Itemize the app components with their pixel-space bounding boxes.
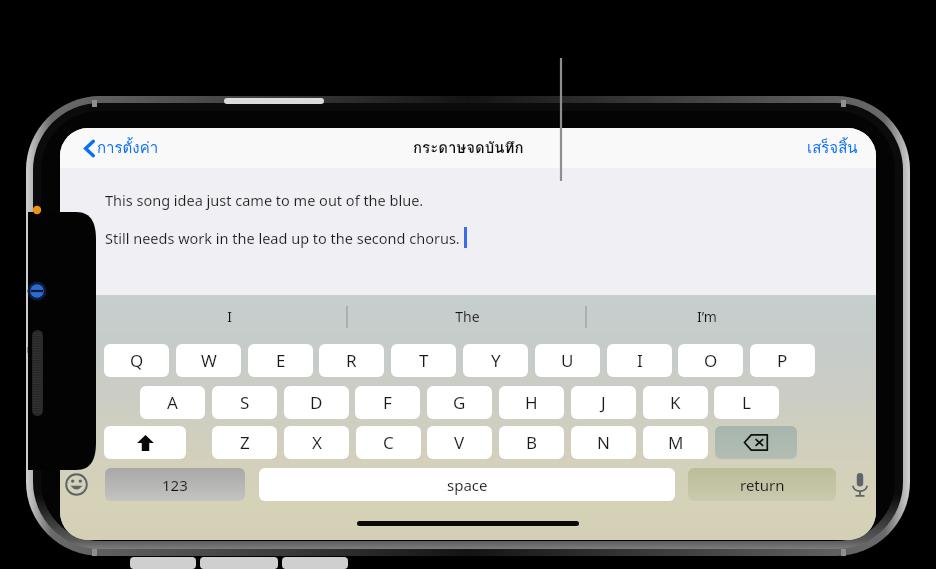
staticText: Still needs work in the lead up to the s… xyxy=(105,228,460,248)
staticText: M xyxy=(668,431,684,454)
staticText: 123 xyxy=(162,475,188,495)
button[interactable]: U xyxy=(535,344,600,377)
staticText: Y xyxy=(491,349,501,372)
button[interactable]: V xyxy=(427,426,492,459)
staticText: This song idea just came to me out of th… xyxy=(105,190,424,210)
staticText: W xyxy=(201,349,217,372)
staticText: J xyxy=(601,391,606,414)
staticText: R xyxy=(346,349,357,372)
staticText: Z xyxy=(240,431,250,454)
staticText: I xyxy=(227,307,232,326)
button[interactable]: T xyxy=(391,344,456,377)
button[interactable]: E xyxy=(248,344,313,377)
staticText: T xyxy=(419,349,429,372)
staticText: The xyxy=(455,307,480,326)
button[interactable]: Y xyxy=(463,344,528,377)
button[interactable]: G xyxy=(427,386,492,419)
staticText: U xyxy=(561,349,574,372)
button[interactable]: H xyxy=(499,386,564,419)
staticText: L xyxy=(742,391,751,414)
staticText: F xyxy=(383,391,392,414)
button[interactable]: I xyxy=(607,344,672,377)
button[interactable]: K xyxy=(643,386,708,419)
button[interactable]: I’m xyxy=(662,301,752,331)
staticText: D xyxy=(310,391,323,414)
button[interactable]: C xyxy=(356,426,421,459)
button[interactable]: N xyxy=(571,426,636,459)
button[interactable]: Shift xyxy=(104,426,186,459)
button[interactable]: B xyxy=(499,426,564,459)
button[interactable]: J xyxy=(571,386,636,419)
button[interactable]: W xyxy=(176,344,241,377)
staticText: C xyxy=(383,431,394,454)
staticText: I xyxy=(637,349,643,372)
staticText: E xyxy=(276,349,286,372)
button[interactable]: Z xyxy=(212,426,277,459)
staticText: กระดาษจดบันทึก xyxy=(413,136,524,160)
staticText: V xyxy=(454,431,465,454)
button[interactable]: O xyxy=(678,344,743,377)
button[interactable]: A xyxy=(140,386,205,419)
button[interactable]: S xyxy=(212,386,277,419)
staticText: P xyxy=(777,349,788,372)
button[interactable]: F xyxy=(355,386,420,419)
staticText: S xyxy=(240,391,250,414)
staticText: การตั้งค่า xyxy=(97,136,159,160)
staticText: Q xyxy=(130,349,144,372)
button[interactable]: L xyxy=(714,386,779,419)
button[interactable]: Emoji keyboard xyxy=(60,468,97,501)
button[interactable]: R xyxy=(319,344,384,377)
button[interactable]: M xyxy=(643,426,708,459)
staticText: H xyxy=(525,391,538,414)
button[interactable]: 123 xyxy=(105,468,245,501)
button[interactable]: D xyxy=(284,386,349,419)
staticText: space xyxy=(447,475,488,495)
button[interactable]: return xyxy=(688,468,836,501)
button[interactable]: P xyxy=(750,344,815,377)
staticText: A xyxy=(167,391,178,414)
button[interactable]: เสร็จสิ้น xyxy=(807,136,858,160)
button[interactable]: Backspace xyxy=(715,426,797,459)
staticText: O xyxy=(704,349,718,372)
button[interactable]: การตั้งค่า xyxy=(84,136,159,160)
staticText: B xyxy=(526,431,538,454)
staticText: G xyxy=(453,391,466,414)
button[interactable]: Dictation xyxy=(839,468,876,501)
button[interactable]: The xyxy=(422,301,512,331)
staticText: return xyxy=(740,475,785,495)
button[interactable]: X xyxy=(284,426,349,459)
staticText: K xyxy=(670,391,681,414)
button[interactable]: space xyxy=(259,468,675,501)
staticText: I’m xyxy=(697,307,717,326)
button[interactable]: I xyxy=(184,301,274,331)
staticText: N xyxy=(597,431,610,454)
button[interactable]: Q xyxy=(104,344,169,377)
staticText: X xyxy=(312,431,322,454)
staticText: เสร็จสิ้น xyxy=(807,136,858,160)
